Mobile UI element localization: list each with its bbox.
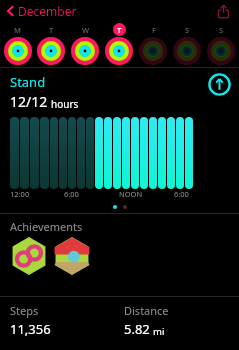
button[interactable]: W (68, 22, 102, 67)
staticText: T (117, 25, 122, 35)
button[interactable]: F (136, 22, 170, 67)
staticText: hours (51, 97, 79, 111)
staticText: Distance (124, 303, 169, 318)
staticText: 11,356 (10, 320, 51, 338)
staticText: 12:00 (10, 189, 30, 199)
staticText: 12/12 (10, 92, 48, 111)
staticText: S (219, 25, 224, 35)
button[interactable]: M (1, 22, 34, 67)
button[interactable]: S (204, 22, 238, 67)
staticText: December (18, 3, 77, 19)
staticText: Achievements (10, 219, 83, 234)
staticText: M (14, 25, 21, 35)
staticText: Steps (10, 303, 39, 318)
staticText: NOON (119, 189, 143, 199)
staticText: S (185, 25, 190, 35)
button[interactable]: Stand goal completed (208, 73, 231, 96)
button[interactable]: December (5, 0, 79, 22)
staticText: 6:00 (174, 189, 189, 199)
staticText: 5.82 (124, 320, 150, 338)
button[interactable]: Share (212, 0, 234, 22)
button[interactable]: T (102, 22, 136, 67)
staticText: F (152, 25, 156, 35)
button[interactable]: Perfect week achievement (10, 237, 48, 275)
button[interactable]: Distance (124, 303, 239, 338)
button[interactable]: Steps (10, 303, 124, 338)
staticText: mi (153, 325, 165, 338)
button[interactable]: Workout achievement (53, 237, 91, 275)
button[interactable]: T (34, 22, 68, 67)
staticText: W (82, 25, 90, 35)
staticText: 6:00 (64, 189, 79, 199)
staticText: Stand (10, 73, 46, 91)
button[interactable]: S (170, 22, 204, 67)
staticText: T (49, 25, 54, 35)
